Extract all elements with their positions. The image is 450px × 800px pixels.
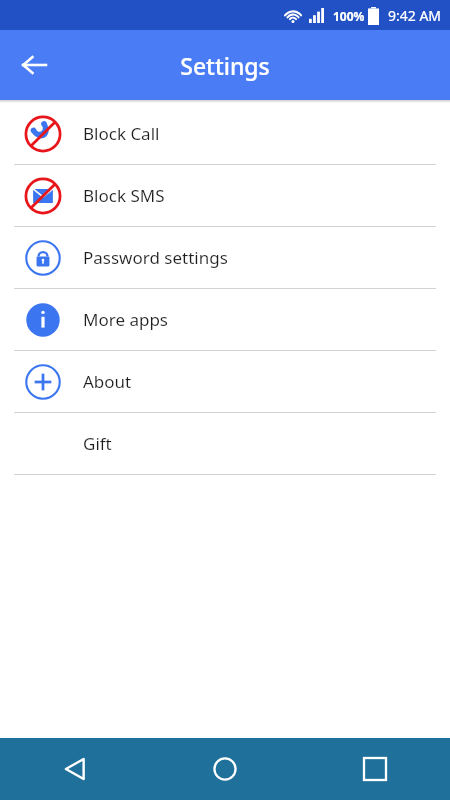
staticText: 9:42 AM — [388, 6, 442, 25]
staticText: Block Call — [83, 122, 160, 145]
button[interactable]: More apps — [0, 289, 450, 350]
button[interactable]: Recent apps — [300, 738, 450, 800]
staticText: Block SMS — [83, 184, 165, 207]
staticText: Password settings — [83, 246, 228, 269]
staticText: About — [83, 370, 132, 393]
staticText: Gift — [83, 432, 112, 455]
staticText: Settings — [180, 50, 270, 81]
staticText: 100% — [333, 8, 365, 24]
button[interactable]: Back — [0, 738, 150, 800]
staticText: More apps — [83, 308, 168, 331]
button[interactable]: About — [0, 351, 450, 412]
button[interactable]: Block SMS — [0, 165, 450, 226]
button[interactable]: Gift — [0, 413, 450, 474]
button[interactable]: Block Call — [0, 103, 450, 164]
button[interactable]: Home — [150, 738, 300, 800]
button[interactable]: Back — [8, 39, 60, 91]
button[interactable]: Password settings — [0, 227, 450, 288]
